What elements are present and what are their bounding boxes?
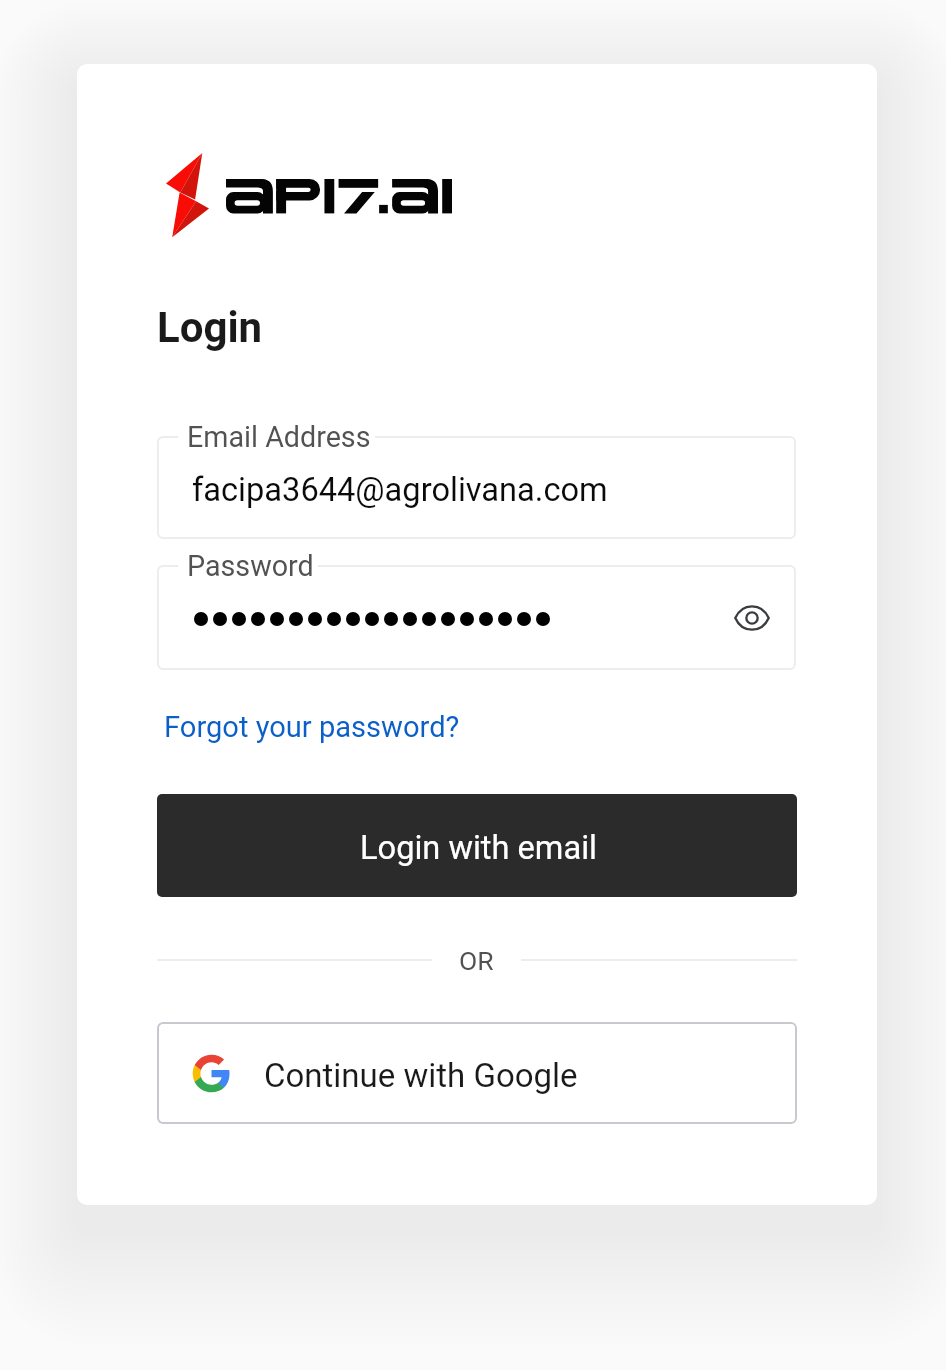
button[interactable]: Forgot your password? (164, 710, 460, 744)
staticText: OR (459, 945, 494, 976)
button[interactable]: Show password (157, 565, 796, 670)
button[interactable]: Continue with Google (157, 1022, 797, 1124)
button[interactable]: facipa3644@agrolivana.com (157, 436, 796, 539)
staticText: Login with email (360, 829, 598, 867)
button[interactable]: Login with email (157, 794, 797, 897)
staticText: Login (157, 303, 263, 352)
button[interactable]: Show password (728, 594, 776, 642)
staticText: Continue with Google (264, 1056, 578, 1095)
other: api7.ai logo (166, 153, 209, 237)
staticText: facipa3644@agrolivana.com (192, 471, 608, 509)
staticText: Password (187, 549, 314, 583)
staticText: Email Address (187, 420, 371, 454)
